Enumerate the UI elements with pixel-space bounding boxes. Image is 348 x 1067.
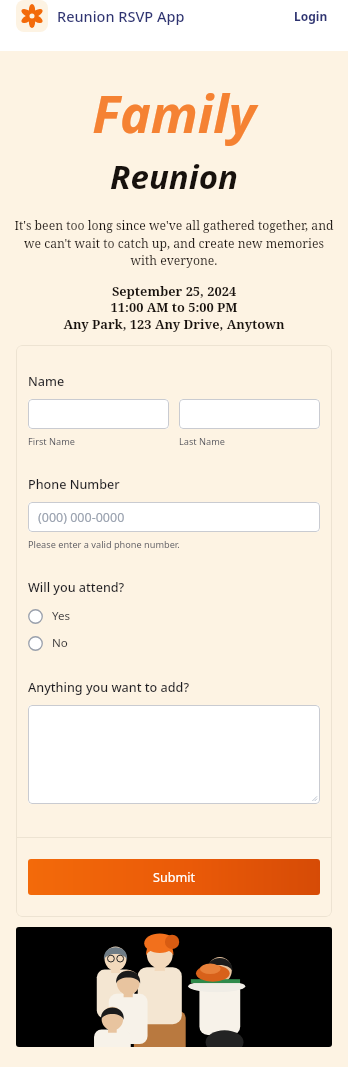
- staticText: (000) 000-0000: [38, 509, 125, 526]
- staticText: Login: [294, 8, 328, 24]
- staticText: September 25, 2024 11:00 AM to 5:00 PM A…: [63, 282, 285, 333]
- staticText: Anything you want to add?: [28, 679, 190, 696]
- staticText: Please enter a valid phone number.: [28, 538, 180, 551]
- button[interactable]: Yes: [28, 606, 320, 626]
- button[interactable]: (000) 000-0000: [28, 502, 320, 532]
- staticText: Family: [92, 77, 256, 148]
- staticText: Reunion: [110, 154, 238, 199]
- staticText: It's been too long since we've all gathe…: [14, 217, 334, 268]
- button[interactable]: Reunion RSVP App: [16, 0, 185, 32]
- staticText: No: [52, 635, 68, 651]
- staticText: Name: [28, 373, 65, 390]
- button[interactable]: [28, 705, 320, 804]
- button[interactable]: No: [28, 633, 320, 653]
- staticText: Will you attend?: [28, 579, 125, 596]
- button[interactable]: [28, 399, 169, 429]
- staticText: Submit: [153, 869, 196, 886]
- button[interactable]: Family reunion photo: [16, 927, 332, 1047]
- staticText: Yes: [52, 608, 71, 624]
- staticText: Last Name: [179, 435, 225, 448]
- button[interactable]: [179, 399, 320, 429]
- staticText: Reunion RSVP App: [57, 6, 185, 26]
- button[interactable]: Submit: [28, 859, 320, 895]
- staticText: Phone Number: [28, 476, 120, 493]
- button[interactable]: Login: [290, 2, 332, 30]
- staticText: First Name: [28, 435, 75, 448]
